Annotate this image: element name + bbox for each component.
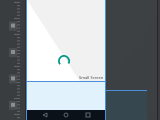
other: Loading [58,55,70,67]
button[interactable]: Small Screen [79,75,104,80]
button[interactable] [27,81,105,110]
button[interactable]: Loading [27,0,105,120]
button[interactable]: Recent apps [84,111,92,119]
staticText: Small Screen [79,75,104,80]
button[interactable]: Back [41,111,49,119]
button[interactable]: Home [62,111,70,119]
